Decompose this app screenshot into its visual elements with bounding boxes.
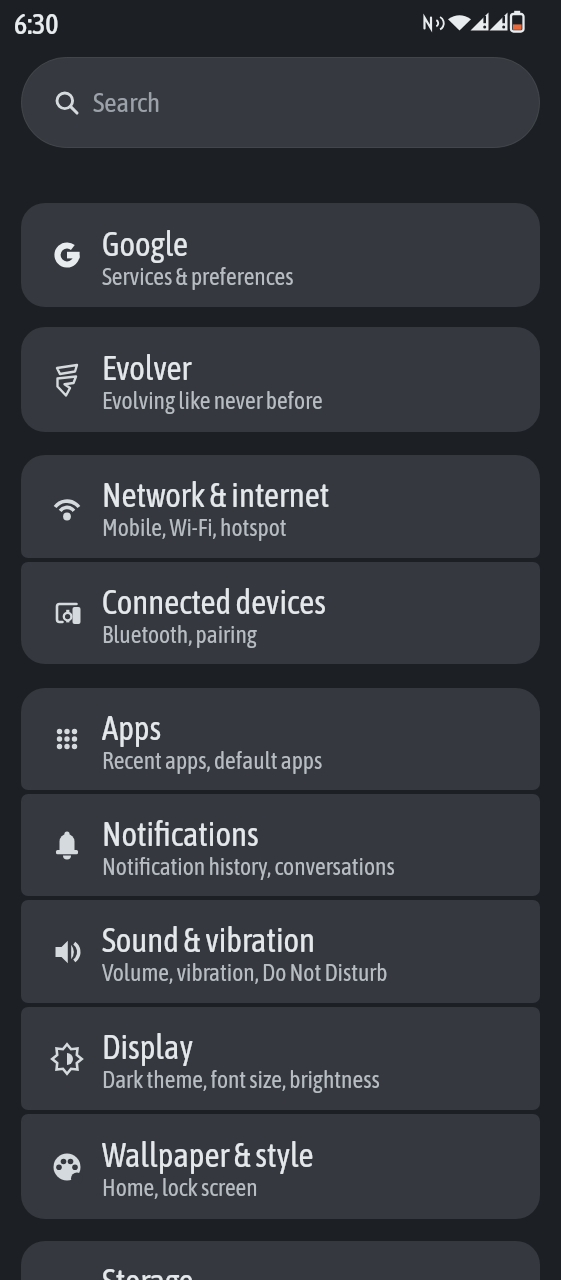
- staticText: Notifications: [102, 815, 259, 853]
- staticText: Sound & vibration: [102, 921, 316, 959]
- staticText: Apps: [102, 709, 162, 747]
- staticText: Evolving like never before: [102, 387, 323, 414]
- button[interactable]: Wallpaper & style: [21, 1114, 540, 1219]
- button[interactable]: Display: [21, 1007, 540, 1110]
- staticText: Storage: [102, 1262, 194, 1280]
- staticText: Dark theme, font size, brightness: [102, 1066, 380, 1093]
- staticText: Connected devices: [102, 583, 326, 621]
- staticText: Recent apps, default apps: [102, 747, 323, 774]
- staticText: Home, lock screen: [102, 1174, 258, 1201]
- button[interactable]: Search: [21, 57, 540, 148]
- button[interactable]: Apps: [21, 688, 540, 790]
- button[interactable]: Google: [21, 203, 540, 307]
- staticText: Search: [93, 87, 161, 118]
- staticText: Display: [102, 1028, 194, 1066]
- staticText: Notification history, conversations: [102, 853, 395, 880]
- button[interactable]: Sound & vibration: [21, 900, 540, 1003]
- button[interactable]: Connected devices: [21, 562, 540, 664]
- staticText: Services & preferences: [102, 263, 294, 290]
- button[interactable]: Notifications: [21, 794, 540, 896]
- button[interactable]: Evolver: [21, 327, 540, 432]
- staticText: Evolver: [102, 349, 192, 387]
- staticText: Mobile, Wi-Fi, hotspot: [102, 514, 287, 541]
- button[interactable]: Network & internet: [21, 455, 540, 558]
- staticText: Google: [102, 225, 189, 263]
- staticText: Volume, vibration, Do Not Disturb: [102, 959, 388, 986]
- staticText: Wallpaper & style: [102, 1136, 314, 1174]
- staticText: Network & internet: [102, 476, 330, 514]
- staticText: 6:30: [14, 8, 59, 40]
- staticText: Bluetooth, pairing: [102, 621, 257, 648]
- button[interactable]: Storage: [21, 1241, 540, 1280]
